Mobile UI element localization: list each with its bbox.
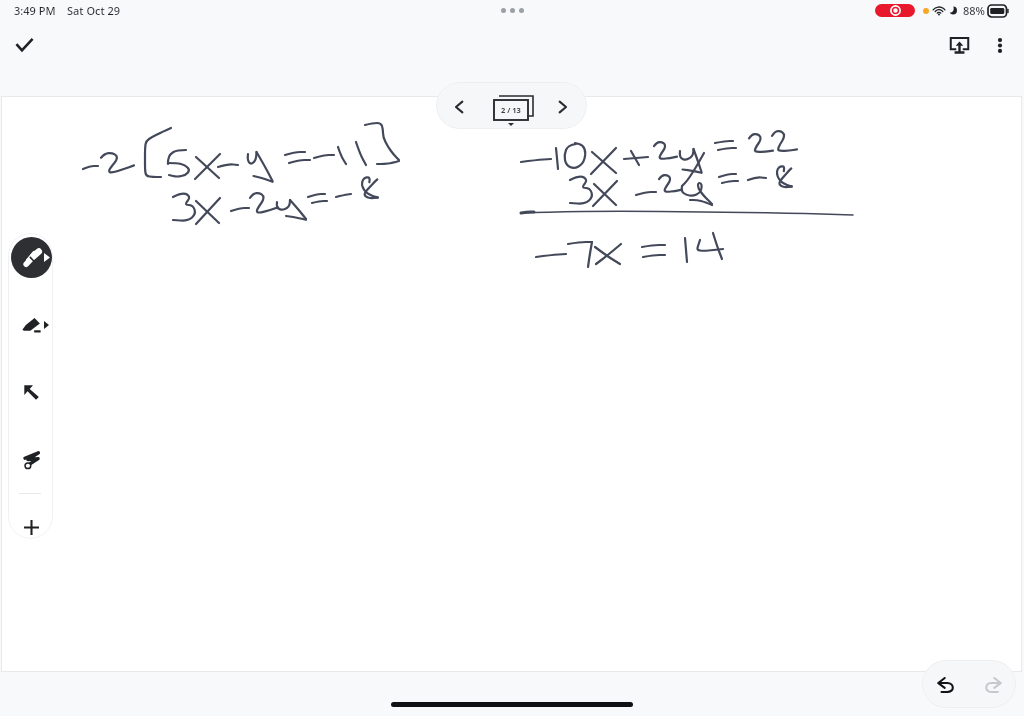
button[interactable]: More options [979,24,1021,66]
button[interactable]: Page 2 of 13 [490,90,534,124]
button[interactable]: Highlighter [10,304,52,346]
button[interactable]: Pen [11,237,52,278]
staticText: Sat Oct 29 [67,3,121,18]
button[interactable]: Previous page [438,86,480,128]
button[interactable]: Undo [925,664,966,705]
button[interactable]: Next page [542,86,584,128]
button[interactable]: Present [938,24,981,67]
staticText: 2 / 13 [501,105,521,115]
button[interactable]: Lasso select [10,439,52,481]
staticText: 3:49 PM [14,3,56,18]
button[interactable]: Done [3,23,46,66]
button[interactable]: Redo [972,664,1013,705]
button[interactable]: Add [10,506,52,539]
staticText: 88% [963,3,985,18]
button[interactable]: Select [10,371,52,413]
